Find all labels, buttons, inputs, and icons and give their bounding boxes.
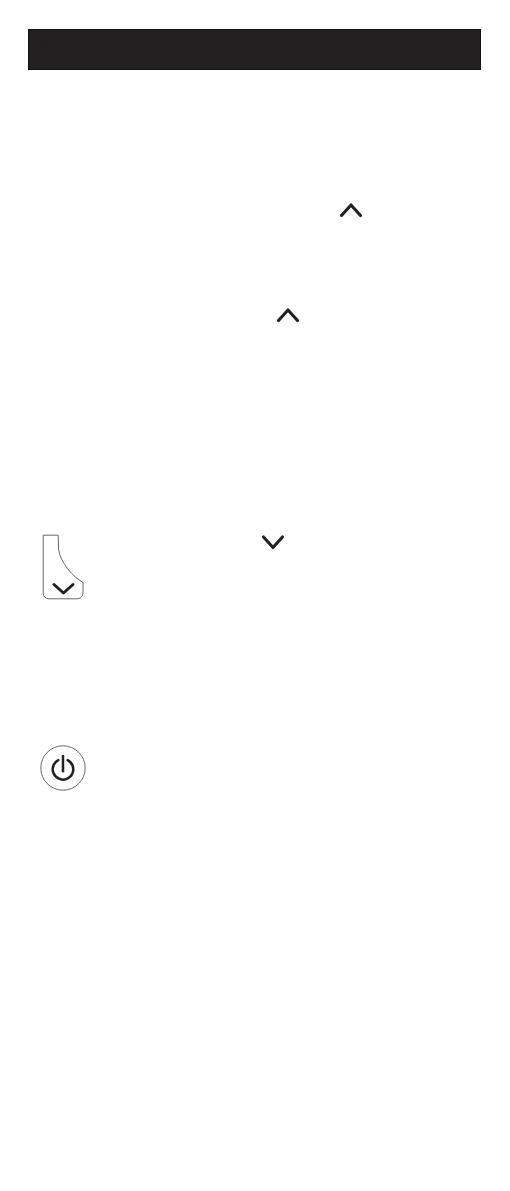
button[interactable]: Expand section [40,530,90,604]
button[interactable]: Expand [258,530,288,554]
button[interactable]: Toolbar [28,29,481,70]
button[interactable]: Collapse [336,198,366,222]
button[interactable]: Power [40,745,86,791]
button[interactable]: Collapse [273,303,303,327]
